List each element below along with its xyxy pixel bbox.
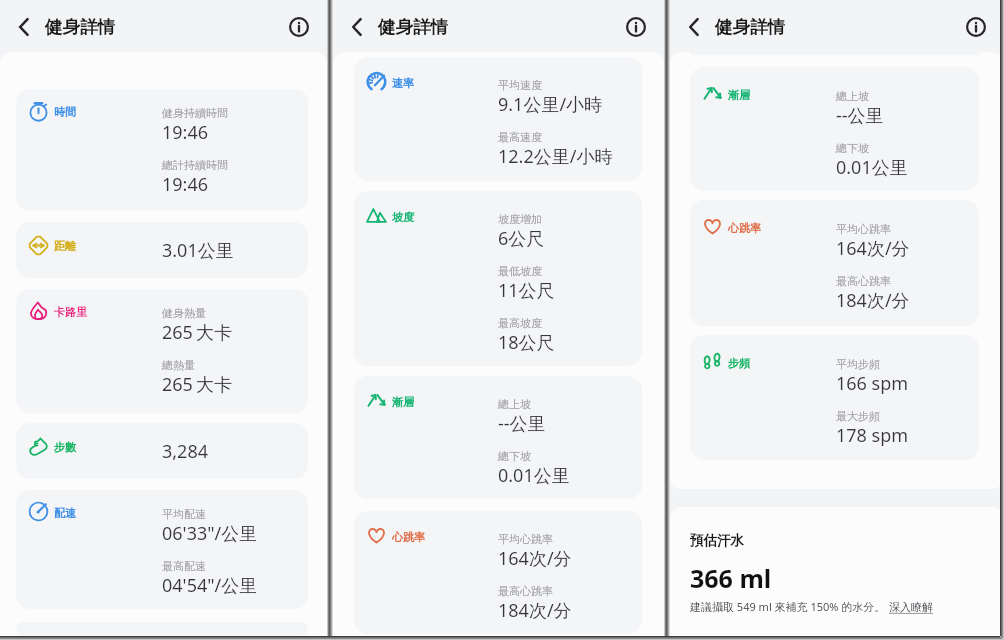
staticText: 健身詳情 [45, 16, 115, 38]
staticText: 距離 [54, 239, 76, 253]
staticText: 健身熱量 [162, 306, 206, 320]
staticText: 總上坡 [836, 89, 869, 103]
staticText: 步頻 [728, 356, 750, 370]
staticText: 3,284 [162, 439, 209, 464]
staticText: 265 大卡 [162, 372, 232, 397]
staticText: 最高速度 [498, 130, 542, 144]
button[interactable]: 坡度 [354, 191, 642, 366]
staticText: 建議攝取 549 ml 來補充 150% 的水分。 [690, 599, 889, 614]
staticText: 健身持續時間 [162, 106, 228, 120]
staticText: 時間 [54, 105, 76, 119]
staticText: 心跳率 [392, 530, 425, 544]
staticText: 卡路里 [54, 305, 87, 319]
button[interactable]: Back [340, 10, 374, 44]
button[interactable]: 步數 [16, 423, 308, 479]
button[interactable]: 距離 [16, 222, 308, 278]
staticText: 總計持續時間 [162, 158, 228, 172]
staticText: 平均心跳率 [498, 532, 553, 546]
staticText: 184次/分 [498, 598, 572, 623]
staticText: 178 spm [836, 423, 909, 448]
staticText: 步數 [54, 440, 76, 454]
staticText: 平均速度 [498, 78, 542, 92]
staticText: 平均配速 [162, 507, 206, 521]
staticText: --公里 [836, 103, 884, 128]
staticText: 速率 [392, 76, 414, 90]
staticText: 9.1公里/小時 [498, 92, 603, 117]
staticText: 19:46 [162, 120, 209, 145]
staticText: 6公尺 [498, 226, 545, 251]
staticText: 坡度增加 [498, 212, 542, 226]
staticText: 18公尺 [498, 330, 555, 355]
staticText: 04'54"/公里 [162, 573, 258, 598]
staticText: 166 spm [836, 371, 909, 396]
staticText: 12.2公里/小時 [498, 144, 613, 169]
staticText: 164次/分 [498, 546, 572, 571]
button[interactable]: 步頻 [690, 335, 979, 460]
staticText: 最高坡度 [498, 316, 542, 330]
button[interactable]: 心跳率 [354, 511, 642, 634]
staticText: 心跳率 [728, 221, 761, 235]
staticText: 健身詳情 [378, 16, 448, 38]
staticText: 最低坡度 [498, 264, 542, 278]
staticText: 184次/分 [836, 288, 910, 313]
staticText: 總下坡 [836, 141, 869, 155]
staticText: 06'33"/公里 [162, 521, 258, 546]
staticText: 最高配速 [162, 559, 206, 573]
button[interactable]: 配速 [16, 490, 308, 609]
staticText: 總上坡 [498, 397, 531, 411]
staticText: 最大步頻 [836, 409, 880, 423]
staticText: 漸層 [728, 88, 750, 102]
button[interactable]: 漸層 [354, 376, 642, 499]
button[interactable]: Information [282, 10, 316, 44]
button[interactable]: 漸層 [690, 67, 979, 191]
staticText: 最高心跳率 [498, 584, 553, 598]
staticText: 19:46 [162, 172, 209, 197]
button[interactable]: 深入瞭解 [889, 600, 933, 614]
staticText: 配速 [54, 506, 76, 520]
staticText: 0.01公里 [836, 155, 908, 180]
staticText: 0.01公里 [498, 463, 570, 488]
button[interactable]: 卡路里 [16, 289, 308, 413]
button[interactable]: Back [677, 10, 711, 44]
staticText: 最高心跳率 [836, 274, 891, 288]
staticText: 164次/分 [836, 236, 910, 261]
staticText: 健身詳情 [715, 16, 785, 38]
staticText: 11公尺 [498, 278, 555, 303]
staticText: 366 ml [690, 561, 772, 595]
button[interactable]: Information [619, 10, 653, 44]
staticText: 坡度 [392, 210, 414, 224]
button[interactable]: Back [7, 10, 41, 44]
staticText: --公里 [498, 411, 546, 436]
button[interactable]: 時間 [16, 89, 308, 211]
button[interactable]: 心跳率 [690, 200, 979, 326]
staticText: 總熱量 [162, 358, 195, 372]
staticText: 平均心跳率 [836, 222, 891, 236]
staticText: 3.01公里 [162, 238, 234, 263]
staticText: 平均步頻 [836, 357, 880, 371]
staticText: 漸層 [392, 395, 414, 409]
staticText: 總下坡 [498, 449, 531, 463]
staticText: 預估汗水 [690, 532, 744, 549]
button[interactable]: Information [959, 10, 993, 44]
staticText: 265 大卡 [162, 320, 232, 345]
button[interactable]: 速率 [354, 57, 642, 181]
